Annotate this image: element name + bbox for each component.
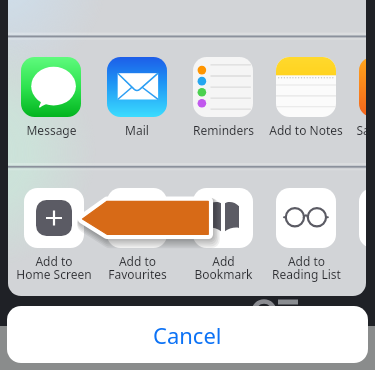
button[interactable]: Add to Notes	[263, 53, 349, 138]
staticText: Reminders	[193, 122, 254, 138]
staticText: Cancel	[153, 320, 222, 350]
staticText: Mail	[125, 122, 149, 138]
button[interactable]: Message	[8, 53, 94, 138]
staticText: Add to Reading List	[272, 253, 341, 283]
button[interactable]: Reminders	[180, 53, 266, 138]
button[interactable]: Add Bookmark	[180, 184, 266, 283]
button[interactable]: Mail	[94, 53, 180, 138]
button[interactable]: Add to Home Screen	[11, 184, 97, 283]
button[interactable]: Safari	[346, 53, 366, 138]
button[interactable]: Add to Reading List	[263, 184, 349, 283]
staticText: Add to Notes	[269, 122, 343, 138]
staticText: Safari	[356, 122, 366, 138]
staticText: Add Bookmark	[194, 253, 253, 283]
staticText: Add to Favourites	[108, 253, 167, 283]
button[interactable]: Copy	[346, 184, 366, 269]
button[interactable]: Cancel	[7, 306, 368, 363]
staticText: Message	[26, 122, 77, 138]
staticText: Add to Home Screen	[16, 253, 92, 283]
button[interactable]: Add to Favourites	[94, 184, 180, 283]
